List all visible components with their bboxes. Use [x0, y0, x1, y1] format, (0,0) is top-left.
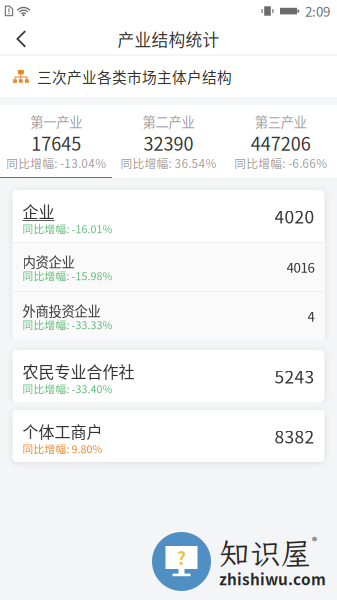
staticText: 第二产业: [142, 112, 194, 131]
staticText: 5243: [274, 363, 314, 389]
staticText: 同比增幅: -15.98%: [22, 268, 112, 283]
staticText: 个体工商户: [22, 419, 102, 443]
button[interactable]: 第三产业: [225, 105, 337, 178]
staticText: 内资企业: [22, 252, 74, 271]
staticText: 同比增幅: -33.33%: [22, 317, 112, 332]
staticText: 4020: [274, 203, 314, 229]
button[interactable]: 个体工商户: [12, 410, 324, 462]
staticText: 同比增幅: -6.66%: [234, 154, 327, 171]
staticText: 第三产业: [255, 112, 307, 131]
staticText: 农民专业合作社: [22, 359, 134, 383]
staticText: 2:09: [305, 1, 330, 21]
staticText: ®: [312, 533, 317, 548]
staticText: 17645: [31, 130, 81, 156]
staticText: 三次产业各类市场主体户结构: [37, 66, 232, 87]
button[interactable]: 外商投资企业: [12, 292, 324, 340]
staticText: 447206: [251, 130, 311, 156]
staticText: 同比增幅: 36.54%: [120, 154, 216, 171]
staticText: 4016: [286, 257, 314, 277]
staticText: zhishiwu.com: [219, 567, 326, 590]
button[interactable]: 企业: [12, 190, 324, 242]
button[interactable]: 农民专业合作社: [12, 350, 324, 402]
button[interactable]: 第二产业: [112, 105, 225, 178]
staticText: 产业结构统计: [117, 27, 219, 51]
button[interactable]: Back: [0, 22, 42, 55]
staticText: 同比增幅: -16.01%: [22, 221, 112, 236]
staticText: 知识屋: [219, 533, 312, 573]
staticText: 同比增幅: 9.80%: [22, 441, 102, 456]
staticText: 同比增幅: -33.40%: [22, 381, 112, 396]
staticText: 8382: [274, 423, 314, 449]
staticText: 第一产业: [30, 112, 82, 131]
staticText: 4: [307, 306, 314, 326]
staticText: 同比增幅: -13.04%: [6, 154, 106, 171]
staticText: 企业: [22, 199, 54, 223]
staticText: 32390: [143, 130, 193, 156]
staticText: ?: [177, 545, 186, 570]
button[interactable]: 第一产业: [0, 105, 112, 178]
button[interactable]: 内资企业: [12, 243, 324, 291]
staticText: 外商投资企业: [22, 301, 100, 320]
